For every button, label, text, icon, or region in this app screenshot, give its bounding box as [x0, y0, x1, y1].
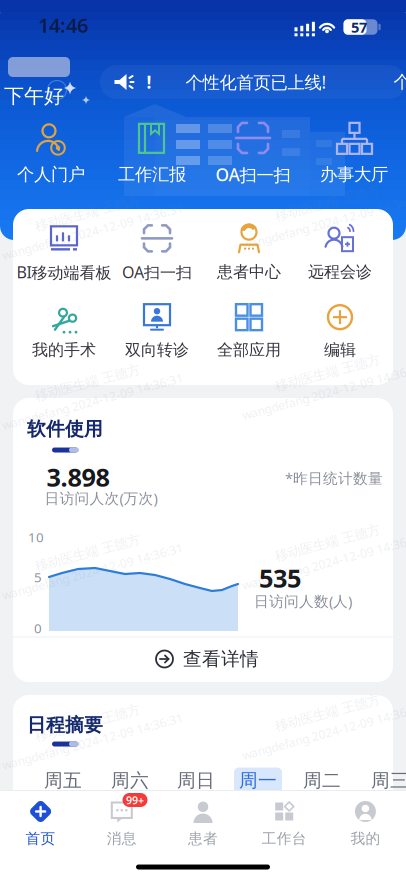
- staticText: BI移动端看板: [16, 261, 111, 283]
- staticText: 周一: [239, 769, 277, 792]
- staticText: 工作台: [262, 829, 307, 847]
- button[interactable]: 周二: [298, 767, 346, 793]
- staticText: 日访问人数(人): [254, 591, 352, 611]
- staticText: 日访问人次(万次): [44, 488, 157, 508]
- button[interactable]: 消息: [107, 799, 137, 847]
- staticText: 周日: [177, 769, 215, 792]
- staticText: wangdefang 2024-12-09 14:36:31: [0, 394, 183, 410]
- staticText: 患者: [188, 829, 218, 847]
- staticText: 移动医生端 王德方: [36, 714, 144, 731]
- staticText: 编辑: [324, 340, 356, 360]
- staticText: 工作汇报: [118, 164, 186, 185]
- button[interactable]: 办事大厅: [320, 121, 388, 185]
- button[interactable]: OA扫一扫: [215, 120, 290, 186]
- button[interactable]: 患者: [188, 799, 218, 847]
- staticText: 535: [259, 561, 301, 595]
- staticText: 周二: [303, 769, 341, 792]
- staticText: 患者中心: [217, 262, 281, 282]
- staticText: OA扫一扫: [215, 163, 290, 186]
- button[interactable]: 查看详情: [155, 647, 259, 670]
- staticText: 我的: [350, 829, 380, 847]
- staticText: 5: [34, 568, 42, 586]
- staticText: 14:46: [38, 12, 88, 38]
- button[interactable]: 全部应用: [217, 299, 281, 360]
- button[interactable]: 远程会诊: [308, 221, 372, 282]
- staticText: 0: [34, 619, 42, 637]
- staticText: 移动医生端 王德方: [276, 704, 384, 721]
- staticText: 我的手术: [32, 340, 96, 360]
- button[interactable]: 双向转诊: [125, 299, 189, 360]
- button[interactable]: 患者中心: [217, 221, 281, 282]
- staticText: 57: [351, 17, 367, 37]
- button[interactable]: 我的: [350, 799, 380, 847]
- button[interactable]: BI移动端看板: [16, 220, 111, 283]
- staticText: 消息: [107, 829, 137, 847]
- staticText: 周三: [371, 769, 406, 792]
- button[interactable]: 工作台: [262, 799, 307, 847]
- staticText: 10: [28, 528, 44, 546]
- button[interactable]: OA扫一扫: [122, 220, 192, 283]
- button[interactable]: 编辑: [322, 299, 358, 360]
- staticText: 下午好: [4, 84, 64, 108]
- staticText: 查看详情: [183, 647, 259, 670]
- staticText: 移动医生端 王德方: [276, 194, 384, 211]
- staticText: 移动医生端 王德方: [276, 534, 384, 551]
- staticText: 移动医生端 王德方: [36, 204, 144, 221]
- staticText: 全部应用: [217, 340, 281, 360]
- button[interactable]: 周三: [366, 767, 406, 793]
- staticText: wangdefang 2024-12-09 14:36:31: [0, 564, 183, 580]
- staticText: 移动医生端 王德方: [36, 544, 144, 561]
- staticText: 个人门户: [17, 164, 85, 185]
- button[interactable]: 个人门户: [17, 121, 85, 185]
- staticText: 双向转诊: [125, 340, 189, 360]
- staticText: 远程会诊: [308, 262, 372, 282]
- staticText: 周五: [44, 769, 82, 792]
- staticText: 个: [393, 71, 406, 93]
- staticText: wangdefang 2024-12-09 14:36:31: [0, 224, 183, 240]
- button[interactable]: 个性化首页已上线!: [185, 70, 326, 93]
- staticText: 日程摘要: [27, 713, 103, 736]
- button[interactable]: 首页: [26, 799, 56, 847]
- staticText: wangdefang 2024-12-09 14:36:31: [236, 214, 406, 230]
- button[interactable]: 周一: [234, 767, 282, 793]
- staticText: 周六: [111, 769, 149, 792]
- button[interactable]: 周日: [172, 767, 220, 793]
- staticText: 移动医生端 王德方: [36, 374, 144, 391]
- staticText: wangdefang 2024-12-09 14:36:31: [0, 734, 183, 750]
- staticText: 软件使用: [27, 417, 103, 440]
- staticText: 首页: [26, 829, 56, 847]
- staticText: 办事大厅: [320, 164, 388, 185]
- staticText: 3.898: [46, 460, 109, 494]
- staticText: OA扫一扫: [122, 261, 192, 283]
- staticText: wangdefang 2024-12-09 14:36:31: [236, 554, 406, 570]
- staticText: !: [146, 70, 151, 93]
- staticText: 99+: [126, 793, 144, 807]
- button[interactable]: 我的手术: [32, 299, 96, 360]
- button[interactable]: 周五: [39, 767, 87, 793]
- staticText: wangdefang 2024-12-09 14:36:31: [236, 384, 406, 400]
- staticText: *昨日统计数量: [285, 468, 383, 488]
- staticText: 个性化首页已上线!: [185, 70, 326, 93]
- button[interactable]: 工作汇报: [118, 121, 186, 185]
- staticText: wangdefang 2024-12-09 14:36:31: [236, 724, 406, 740]
- staticText: 移动医生端 王德方: [276, 364, 384, 381]
- button[interactable]: 周六: [106, 767, 154, 793]
